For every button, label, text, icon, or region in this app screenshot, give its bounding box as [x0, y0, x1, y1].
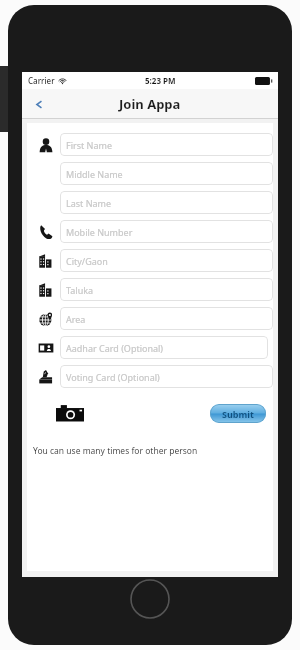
staticText: Area — [66, 313, 86, 325]
button[interactable]: Middle Name — [60, 162, 273, 185]
button[interactable]: Voting Card (Optional) — [60, 365, 273, 388]
button[interactable]: Area — [60, 307, 273, 330]
staticText: Voting Card (Optional) — [66, 371, 160, 383]
staticText: Join Appa — [119, 95, 181, 113]
button[interactable]: Last Name — [60, 191, 273, 214]
staticText: 5:23 PM — [145, 75, 176, 86]
staticText: Taluka — [66, 284, 94, 296]
staticText: Aadhar Card (Optional) — [66, 342, 164, 354]
button[interactable]: Home — [129, 578, 171, 620]
button[interactable]: Aadhar Card (Optional) — [60, 336, 268, 359]
button[interactable]: Back — [22, 89, 56, 119]
button[interactable]: Mobile Number — [60, 220, 273, 243]
staticText: Last Name — [66, 197, 112, 209]
staticText: You can use many times for other person — [33, 445, 198, 457]
button[interactable]: City/Gaon — [60, 249, 273, 272]
staticText: Mobile Number — [66, 226, 133, 238]
button[interactable]: Take photo — [55, 401, 85, 425]
button[interactable]: First Name — [60, 133, 273, 156]
staticText: City/Gaon — [66, 255, 108, 267]
staticText: Middle Name — [66, 168, 123, 180]
staticText: Carrier — [28, 75, 55, 86]
button[interactable]: Submit — [210, 404, 266, 423]
staticText: First Name — [66, 139, 112, 151]
button[interactable]: Taluka — [60, 278, 273, 301]
staticText: Submit — [222, 408, 254, 420]
